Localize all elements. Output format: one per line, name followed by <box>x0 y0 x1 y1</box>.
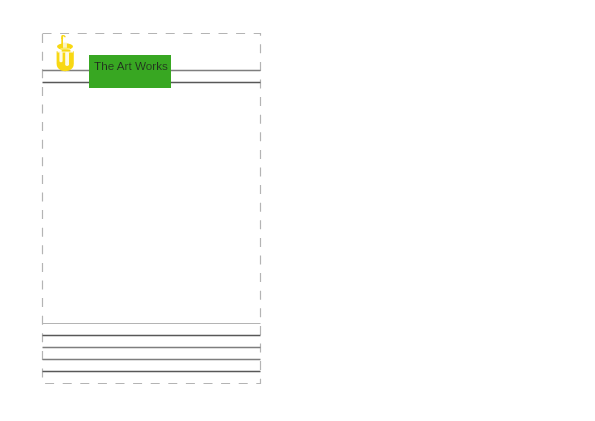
button[interactable]: Row four <box>43 360 261 372</box>
button[interactable]: Art supplies <box>55 33 75 72</box>
staticText: The Art Works <box>94 59 168 72</box>
button[interactable]: Row one <box>43 324 261 336</box>
button[interactable]: Row three <box>43 348 261 360</box>
button[interactable]: Row two <box>43 336 261 348</box>
button[interactable]: The Art Works <box>89 55 171 88</box>
